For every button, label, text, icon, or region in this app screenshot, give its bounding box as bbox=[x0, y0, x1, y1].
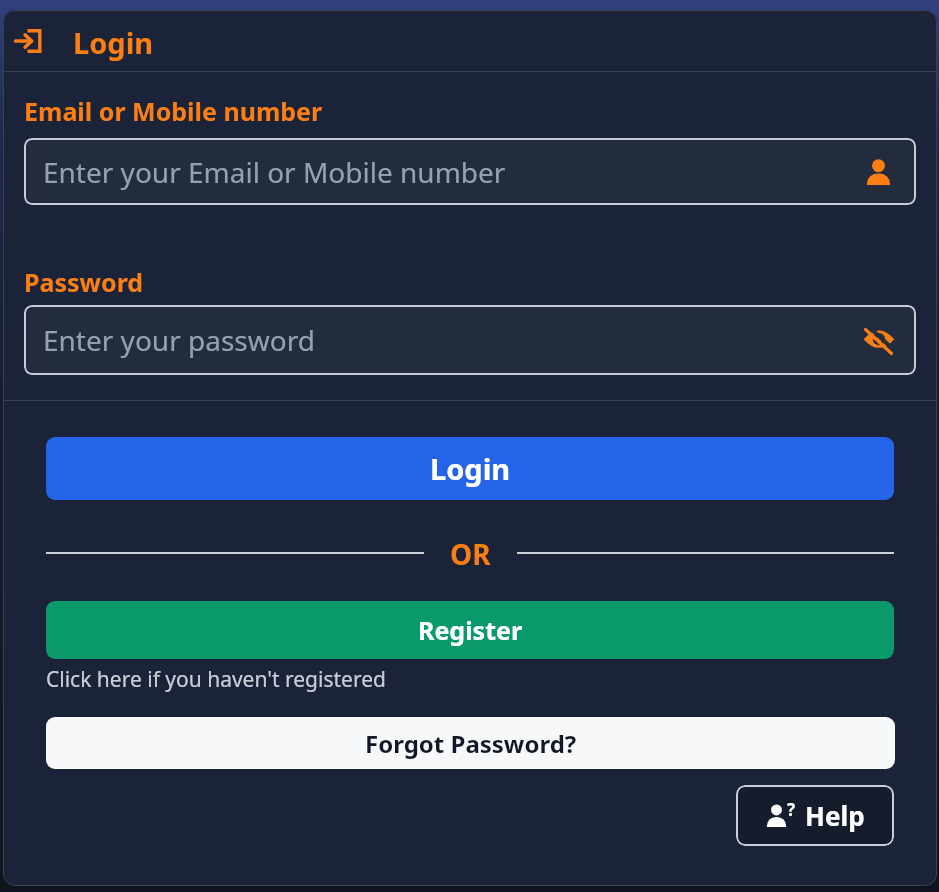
button[interactable]: Register bbox=[46, 601, 894, 659]
staticText: Login bbox=[430, 449, 511, 488]
staticText: Email or Mobile number bbox=[24, 94, 323, 128]
button[interactable]: Forgot Password? bbox=[46, 717, 895, 769]
staticText: Login bbox=[73, 23, 154, 62]
button[interactable]: Login bbox=[46, 437, 894, 500]
button[interactable]: Enter your password bbox=[24, 305, 916, 375]
staticText: Enter your password bbox=[43, 321, 315, 359]
button[interactable]: ? bbox=[736, 785, 894, 846]
staticText: Enter your Email or Mobile number bbox=[43, 153, 506, 191]
staticText: Register bbox=[418, 613, 523, 647]
staticText: ? bbox=[787, 798, 796, 821]
staticText: Click here if you haven't registered bbox=[46, 665, 386, 694]
staticText: Help bbox=[805, 798, 865, 833]
staticText: Password bbox=[24, 265, 144, 299]
staticText: OR bbox=[450, 535, 491, 571]
button[interactable]: Enter your Email or Mobile number bbox=[24, 138, 916, 205]
staticText: Forgot Password? bbox=[365, 727, 577, 760]
